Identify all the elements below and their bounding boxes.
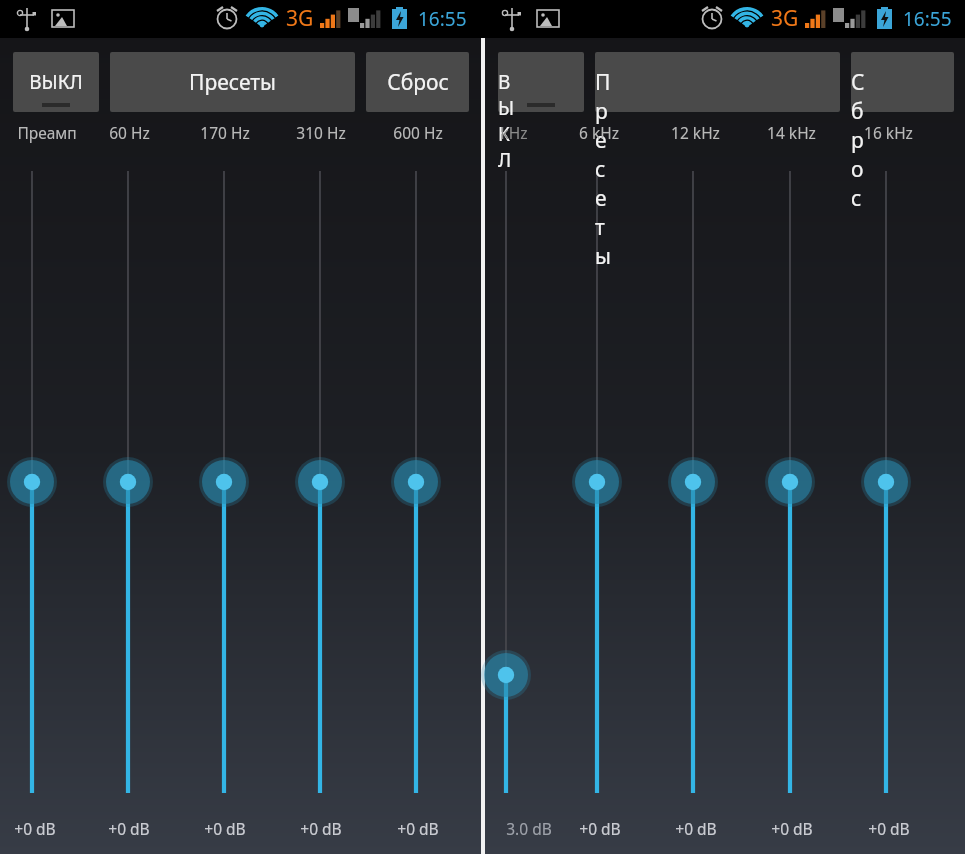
staticText: 170 Hz: [200, 122, 250, 143]
staticText: kHz: [500, 122, 528, 143]
button[interactable]: Equalizer band 3 level: [190, 171, 258, 793]
button[interactable]: Equalizer band 5 level: [382, 171, 450, 793]
staticText: +0 dB: [868, 818, 910, 839]
staticText: +0 dB: [675, 818, 717, 839]
staticText: +0 dB: [204, 818, 246, 839]
staticText: 12 kHz: [671, 122, 720, 143]
button[interactable]: Equalizer band 2 level: [563, 171, 631, 793]
button[interactable]: Equalizer band 1 level: [0, 171, 66, 793]
staticText: +0 dB: [300, 818, 342, 839]
button[interactable]: [13, 52, 99, 112]
button[interactable]: Equalizer band 2 level: [94, 171, 162, 793]
button[interactable]: [498, 52, 584, 112]
button[interactable]: Equalizer band 3 level: [659, 171, 727, 793]
staticText: 3G: [286, 4, 314, 33]
staticText: +0 dB: [579, 818, 621, 839]
staticText: +0 dB: [397, 818, 439, 839]
staticText: +0 dB: [14, 818, 56, 839]
staticText: Преамп: [17, 122, 77, 143]
button[interactable]: Equalizer band 1 level: [472, 171, 540, 793]
staticText: 14 kHz: [767, 122, 816, 143]
button[interactable]: Equalizer band 4 level: [286, 171, 354, 793]
staticText: 60 Hz: [109, 122, 150, 143]
staticText: 310 Hz: [296, 122, 346, 143]
staticText: +0 dB: [771, 818, 813, 839]
button[interactable]: Equalizer band 4 level: [756, 171, 824, 793]
button[interactable]: [595, 52, 840, 112]
staticText: 16:55: [903, 6, 952, 32]
staticText: 3G: [771, 4, 799, 33]
staticText: 16 kHz: [864, 122, 913, 143]
button[interactable]: [851, 52, 954, 112]
button[interactable]: [110, 52, 355, 112]
staticText: 16:55: [418, 6, 467, 32]
staticText: 6 kHz: [579, 122, 619, 143]
staticText: 3.0 dB: [506, 818, 552, 839]
staticText: ВЫКЛ: [29, 69, 83, 95]
staticText: +0 dB: [108, 818, 150, 839]
staticText: 600 Hz: [393, 122, 443, 143]
staticText: Сброс: [387, 68, 449, 97]
staticText: Пресеты: [189, 68, 276, 97]
button[interactable]: Equalizer band 5 level: [852, 171, 920, 793]
button[interactable]: [366, 52, 469, 112]
